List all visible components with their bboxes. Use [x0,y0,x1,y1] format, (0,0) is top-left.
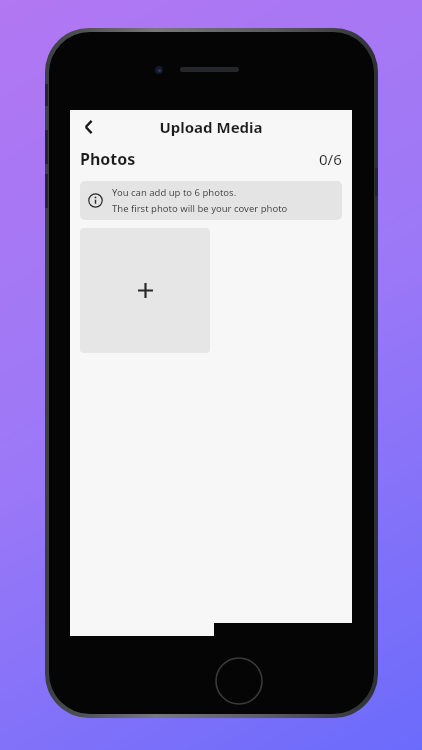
button[interactable]: Home [213,655,265,707]
staticText: The first photo will be your cover photo [112,202,288,215]
button[interactable]: You can add up to 6 photos. [80,181,342,220]
button[interactable]: Back [74,112,104,142]
button[interactable]: Add photo [80,228,210,353]
staticText: You can add up to 6 photos. [112,186,237,199]
staticText: Photos [80,148,136,170]
staticText: 0/6 [319,149,342,169]
staticText: Upload Media [159,117,263,137]
